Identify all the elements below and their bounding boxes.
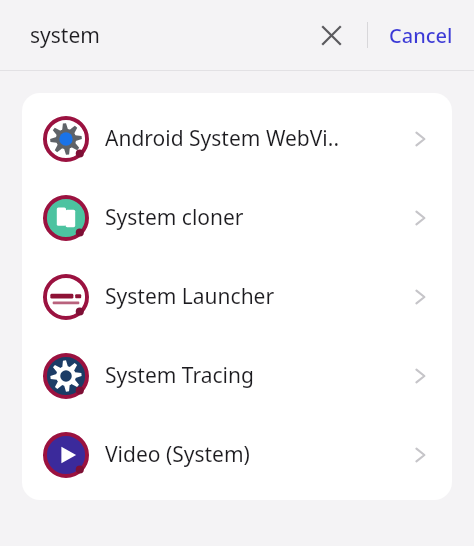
button[interactable]: Video (System) [22,415,452,494]
staticText: System cloner [105,203,402,232]
button[interactable]: system [0,0,308,70]
staticText: Cancel [389,22,453,49]
button[interactable]: Android System WebVi.. [22,99,452,178]
button[interactable]: Cancel [368,0,474,70]
button[interactable]: System cloner [22,178,452,257]
staticText: Android System WebVi.. [105,124,402,153]
staticText: system [30,21,100,50]
button[interactable]: System Tracing [22,336,452,415]
staticText: System Tracing [105,361,402,390]
button[interactable]: Clear search [308,12,354,58]
staticText: System Launcher [105,282,402,311]
staticText: Video (System) [105,440,402,469]
button[interactable]: System Launcher [22,257,452,336]
